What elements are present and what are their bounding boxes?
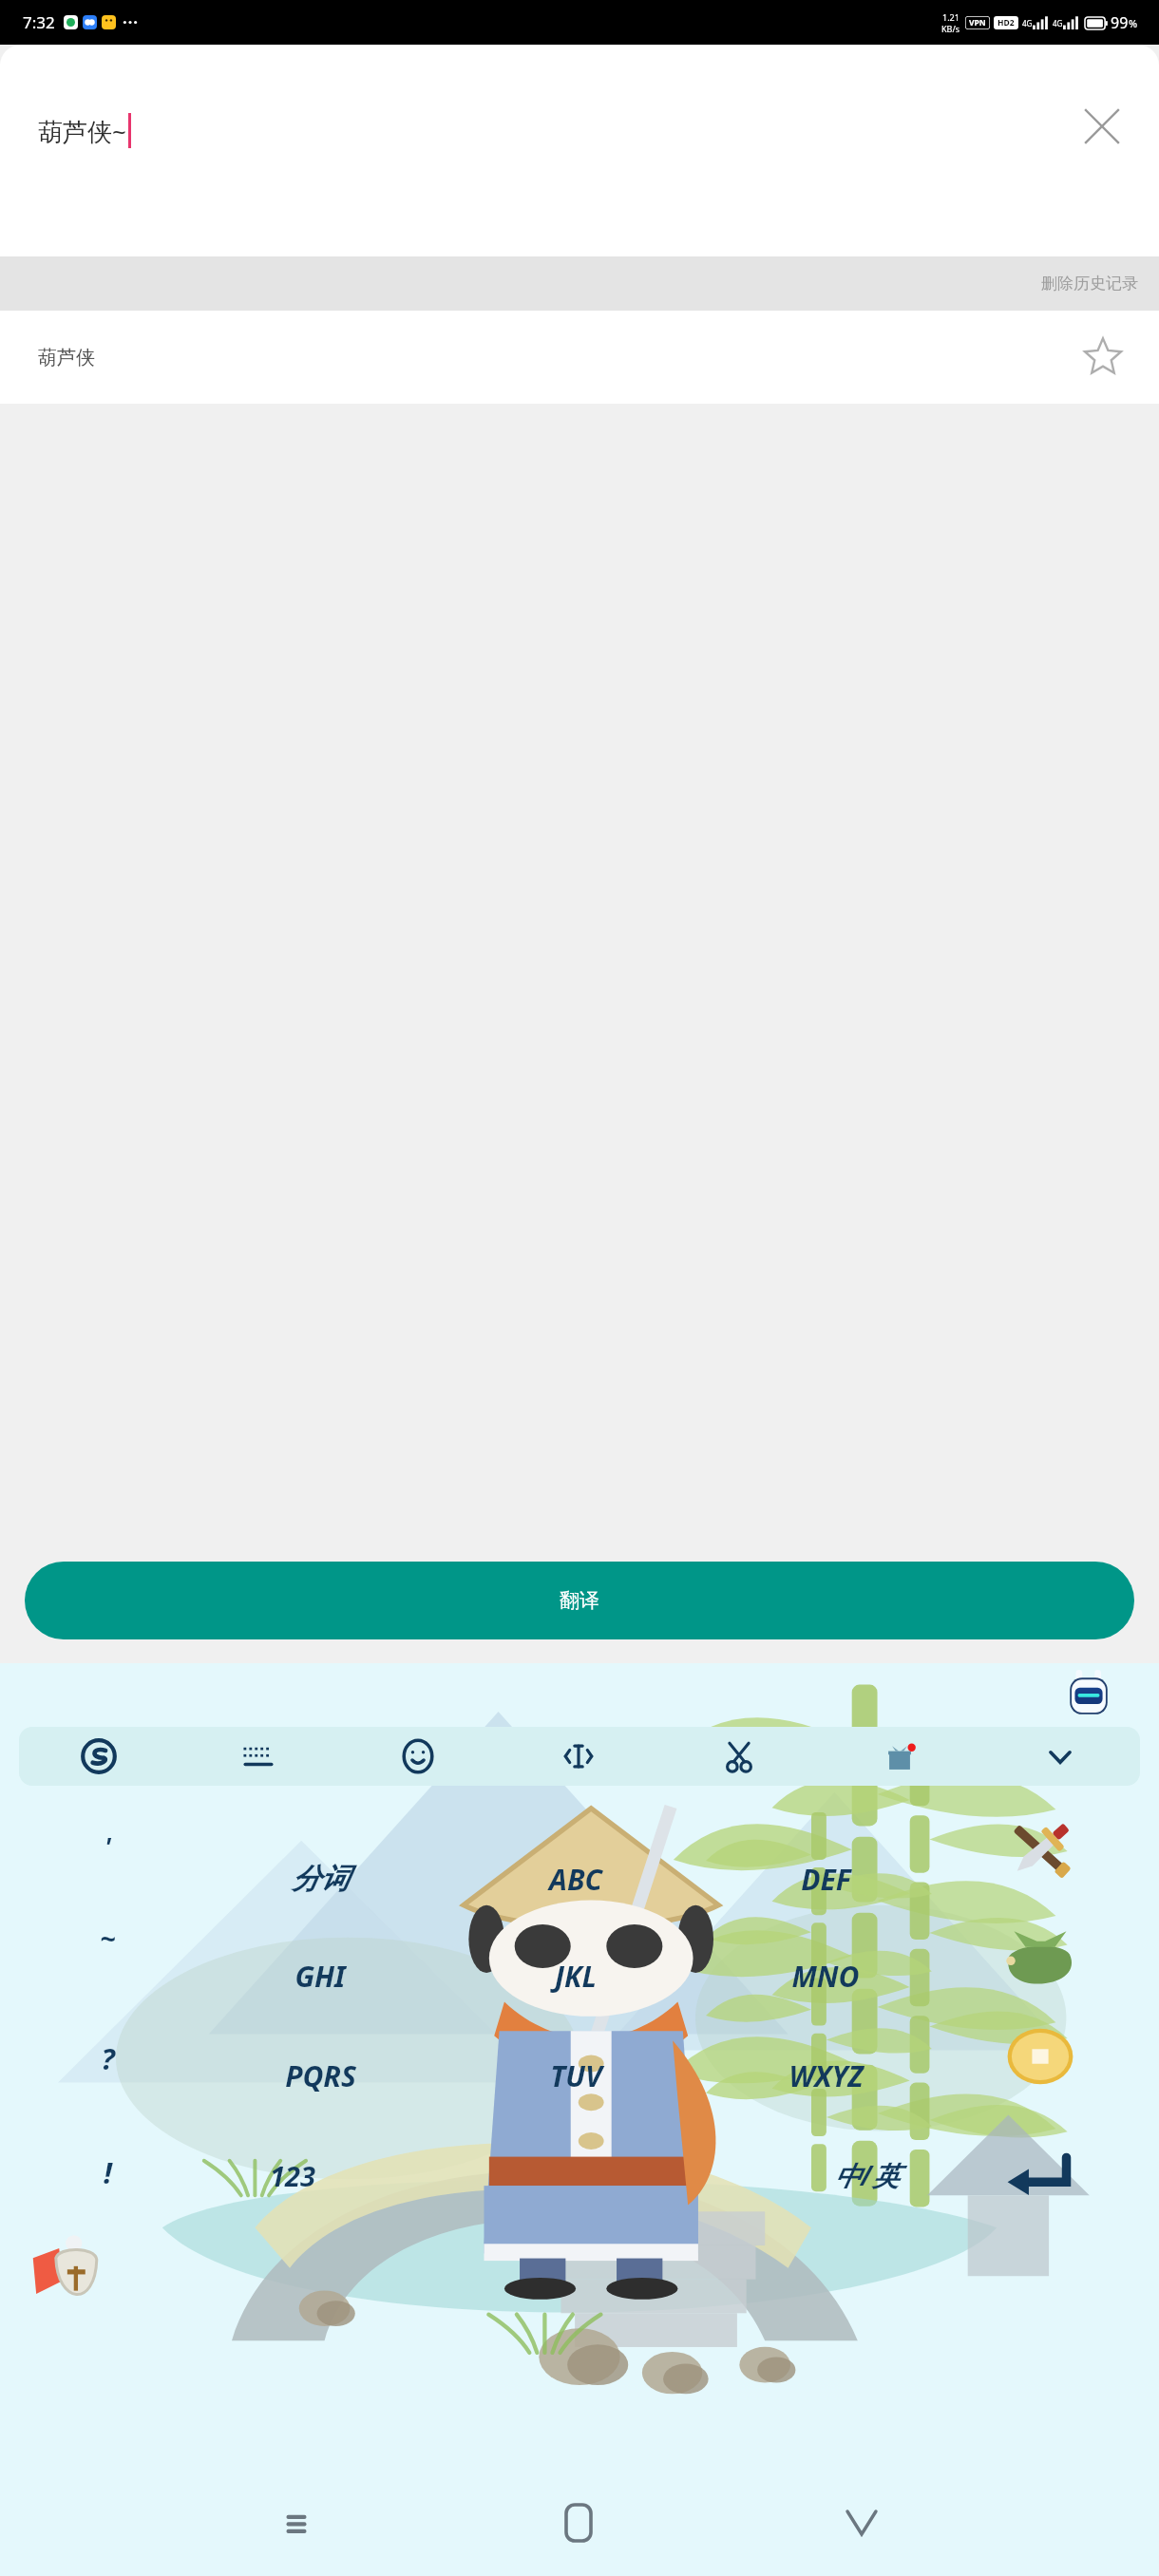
button[interactable]: ! — [36, 2134, 179, 2210]
button[interactable]: 删除历史记录 — [0, 256, 1159, 311]
staticText: TUV — [550, 2056, 602, 2095]
staticText: GHI — [294, 1957, 346, 1996]
staticText: ~ — [100, 1920, 116, 1957]
staticText: 1.21 — [942, 11, 959, 23]
button[interactable]: Enter — [989, 2126, 1092, 2228]
staticText: MNO — [791, 1957, 860, 1996]
staticText: 99 — [1111, 12, 1129, 33]
button[interactable]: Hide keyboard — [979, 1727, 1140, 1786]
staticText: HD2 — [997, 17, 1015, 28]
staticText: 中/英 — [834, 2157, 899, 2193]
button[interactable]: Clipboard — [658, 1727, 819, 1786]
staticText: 葫芦侠~ — [38, 114, 126, 148]
button[interactable]: ? — [36, 2020, 179, 2096]
staticText: KB/s — [941, 23, 960, 34]
staticText: VPN — [969, 17, 986, 28]
staticText: DEF — [801, 1860, 851, 1899]
button[interactable]: PQRS — [249, 2037, 391, 2113]
button[interactable]: Assistant — [1064, 1669, 1113, 1718]
staticText: ' — [104, 1828, 111, 1864]
button[interactable]: DEF — [754, 1841, 897, 1917]
button[interactable]: 123 — [221, 2137, 364, 2213]
button[interactable]: Keyboard layout — [179, 1727, 338, 1786]
button[interactable]: Gifts — [819, 1727, 979, 1786]
button[interactable]: Delete — [989, 1799, 1092, 1902]
button[interactable]: Home — [437, 2470, 720, 2576]
button[interactable]: 分词 — [249, 1841, 391, 1917]
button[interactable]: ABC — [504, 1841, 647, 1917]
staticText: 分词 — [292, 1861, 349, 1897]
button[interactable]: Symbols — [989, 2005, 1092, 2108]
button[interactable]: Emoji — [338, 1727, 498, 1786]
button[interactable]: Edit text — [498, 1727, 658, 1786]
staticText: 123 — [270, 2157, 315, 2194]
button[interactable]: Back — [720, 2470, 1003, 2576]
staticText: 翻译 — [560, 1588, 599, 1613]
button[interactable]: TUV — [504, 2037, 647, 2113]
staticText: ABC — [549, 1860, 602, 1899]
button[interactable]: Recents — [155, 2470, 437, 2576]
staticText: 删除历史记录 — [1041, 274, 1138, 294]
button[interactable]: Voice input — [19, 1727, 179, 1786]
staticText: 4G — [1053, 18, 1063, 28]
staticText: % — [1129, 16, 1138, 30]
button[interactable]: 葫芦侠 — [0, 311, 1159, 404]
button[interactable]: MNO — [754, 1938, 897, 2014]
button[interactable]: Redo — [989, 1900, 1092, 2002]
staticText: ? — [101, 2038, 115, 2078]
staticText: JKL — [555, 1957, 597, 1996]
staticText: ! — [104, 2152, 112, 2192]
staticText: WXYZ — [788, 2056, 864, 2095]
button[interactable]: JKL — [504, 1938, 647, 2014]
staticText: PQRS — [285, 2056, 356, 2095]
button[interactable]: 翻译 — [25, 1562, 1134, 1639]
staticText: 7:32 — [23, 11, 55, 33]
button[interactable]: GHI — [249, 1938, 391, 2014]
staticText: 4G — [1022, 18, 1033, 28]
button[interactable]: Clear — [1075, 100, 1129, 153]
button[interactable]: WXYZ — [754, 2037, 897, 2113]
staticText: 葫芦侠 — [38, 346, 95, 369]
button[interactable]: 中/英 — [795, 2137, 938, 2213]
button[interactable]: Favourite — [1075, 330, 1130, 385]
button[interactable]: ' — [36, 1808, 179, 1884]
button[interactable]: Theme — [21, 2220, 123, 2322]
button[interactable]: ~ — [36, 1900, 179, 1976]
